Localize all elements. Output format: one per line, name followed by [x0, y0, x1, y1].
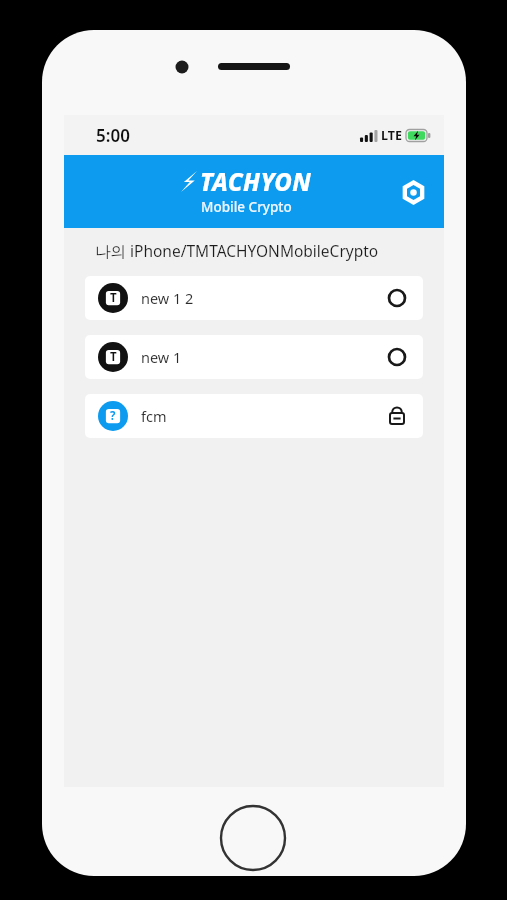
staticText: new 1 2	[141, 288, 194, 308]
staticText: ?	[110, 408, 116, 424]
staticText: Mobile Crypto	[201, 198, 292, 216]
staticText: LTE	[381, 127, 402, 144]
button[interactable]: Settings	[393, 172, 433, 212]
staticText: TACHYON	[200, 165, 312, 198]
button[interactable]: ?	[85, 394, 423, 438]
staticText: 나의 iPhone/TMTACHYONMobileCrypto	[95, 240, 379, 261]
staticText: 5:00	[96, 124, 130, 147]
staticText: T	[110, 349, 117, 365]
staticText: T	[110, 290, 117, 306]
button[interactable]: T	[85, 335, 423, 379]
staticText: new 1	[141, 347, 182, 367]
button[interactable]: T	[85, 276, 423, 320]
staticText: fcm	[141, 406, 167, 426]
